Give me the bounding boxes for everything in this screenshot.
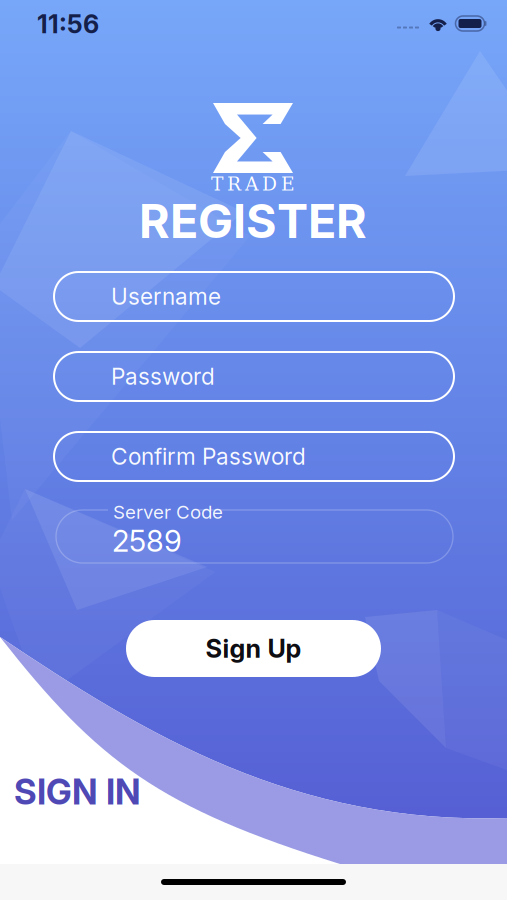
button[interactable]: Username	[54, 272, 454, 321]
staticText: Password	[111, 363, 215, 390]
button[interactable]: Password	[54, 352, 454, 401]
button[interactable]: Confirm Password	[54, 432, 454, 481]
staticText: 2589	[112, 523, 182, 559]
staticText: SIGN IN	[14, 771, 141, 813]
button[interactable]: SIGN IN	[14, 772, 174, 812]
staticText: Server Code	[113, 501, 223, 523]
staticText: Username	[111, 283, 221, 310]
staticText: Sign Up	[205, 633, 301, 664]
staticText: Confirm Password	[111, 443, 306, 470]
staticText: 11:56	[37, 9, 99, 39]
button[interactable]: Sign Up	[126, 620, 381, 677]
staticText: T R A D E	[211, 173, 295, 195]
button[interactable]: Server Code	[56, 510, 453, 563]
staticText: REGISTER	[139, 193, 367, 249]
